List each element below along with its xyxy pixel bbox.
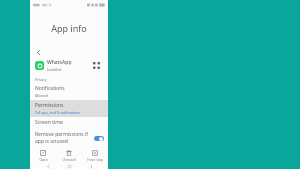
staticText: Uninstall: [62, 158, 76, 162]
button[interactable]: Back: [44, 164, 52, 169]
button[interactable]: Open: [30, 148, 56, 164]
button[interactable]: Recent apps: [87, 164, 95, 169]
staticText: Force stop: [87, 158, 103, 162]
button[interactable]: Force stop: [82, 148, 108, 164]
staticText: App info: [51, 22, 87, 34]
staticText: Installed: [47, 67, 62, 72]
staticText: Tell app, and 9 notifications: [35, 110, 80, 115]
button[interactable]: Uninstall: [56, 148, 82, 164]
button[interactable]: Permissions: [30, 100, 108, 117]
staticText: Privacy: [35, 77, 47, 82]
button[interactable]: WhatsApp: [30, 57, 108, 73]
staticText: Open: [39, 158, 48, 162]
button[interactable]: Home: [65, 164, 73, 169]
staticText: Notifications: [35, 85, 65, 92]
staticText: Remove permissions if app is unused: [35, 131, 92, 145]
staticText: Permissions: [35, 102, 64, 109]
button[interactable]: App shortcuts: [91, 60, 102, 71]
staticText: Allowed: [35, 93, 48, 98]
button[interactable]: Screen time: [30, 117, 108, 128]
staticText: Screen time: [35, 119, 63, 126]
button[interactable]: Back: [34, 48, 43, 57]
button[interactable]: Remove permissions if app is unused: [30, 128, 108, 148]
staticText: WhatsApp: [47, 59, 72, 66]
button[interactable]: Notifications: [30, 83, 108, 100]
